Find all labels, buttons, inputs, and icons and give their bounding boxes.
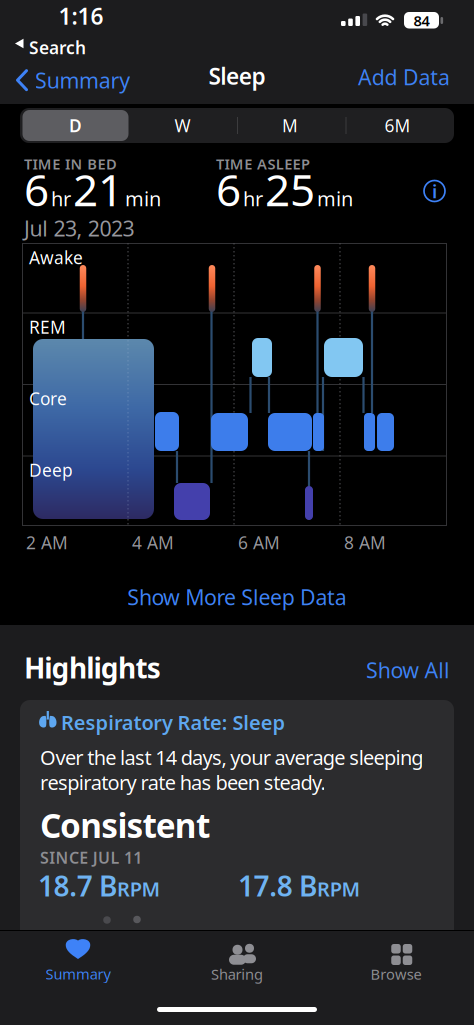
staticText: 6M — [384, 114, 410, 137]
staticText: Consistent — [40, 803, 210, 847]
staticText: W — [174, 114, 190, 137]
button[interactable]: Show All — [366, 656, 450, 684]
staticText: Summary — [46, 964, 110, 983]
staticText: 6 AM — [238, 531, 280, 554]
staticText: hr — [243, 185, 263, 212]
button[interactable]: Summary — [46, 938, 110, 983]
staticText: Search — [29, 36, 86, 59]
staticText: 2 AM — [26, 531, 68, 554]
button[interactable]: M — [282, 114, 298, 137]
staticText: Deep — [29, 458, 73, 481]
staticText: 17.8 B — [238, 867, 317, 904]
staticText: Browse — [370, 964, 421, 984]
staticText: Sleep — [208, 61, 266, 91]
staticText: Over the last 14 days, your average slee… — [40, 744, 423, 771]
button[interactable] — [20, 700, 454, 940]
staticText: RPM — [317, 875, 360, 902]
staticText: REM — [29, 315, 66, 338]
staticText: respiratory rate has been steady. — [40, 769, 325, 796]
button[interactable]: D — [22, 110, 128, 141]
staticText: 21 — [73, 160, 123, 218]
button[interactable]: Add Data — [358, 63, 450, 91]
staticText: Add Data — [358, 63, 450, 91]
staticText: RPM — [117, 875, 160, 902]
staticText: 6 — [24, 160, 49, 218]
staticText: Sharing — [211, 964, 263, 984]
button[interactable]: Sharing — [211, 938, 263, 984]
staticText: Core — [29, 387, 67, 410]
staticText: 18.7 B — [38, 867, 117, 904]
staticText: i — [432, 179, 437, 203]
button[interactable]: Browse — [370, 938, 421, 984]
staticText: SINCE JUL 11 — [40, 847, 142, 868]
staticText: 1:16 — [58, 1, 103, 31]
staticText: Highlights — [24, 649, 161, 686]
staticText: 25 — [265, 160, 315, 218]
staticText: D — [69, 114, 82, 137]
staticText: M — [282, 114, 298, 137]
staticText: TIME ASLEEP — [216, 154, 310, 173]
staticText: min — [125, 185, 161, 212]
staticText: TIME IN BED — [24, 154, 117, 173]
staticText: 4 AM — [132, 531, 174, 554]
button[interactable]: W — [174, 114, 190, 137]
button[interactable]: Show More Sleep Data — [127, 583, 347, 611]
staticText: Jul 23, 2023 — [24, 214, 135, 242]
staticText: 8 AM — [344, 531, 386, 554]
staticText: 84 — [413, 11, 429, 30]
staticText: min — [317, 185, 353, 212]
staticText: 6 — [216, 160, 241, 218]
staticText: Summary — [35, 66, 130, 94]
button[interactable]: 6M — [384, 114, 410, 137]
staticText: Show All — [366, 656, 450, 684]
button[interactable]: i — [424, 179, 445, 203]
button[interactable]: Summary — [16, 66, 130, 94]
staticText: Awake — [29, 246, 83, 269]
staticText: Respiratory Rate: Sleep — [61, 709, 286, 736]
staticText: hr — [51, 185, 71, 212]
staticText: Show More Sleep Data — [127, 583, 347, 611]
